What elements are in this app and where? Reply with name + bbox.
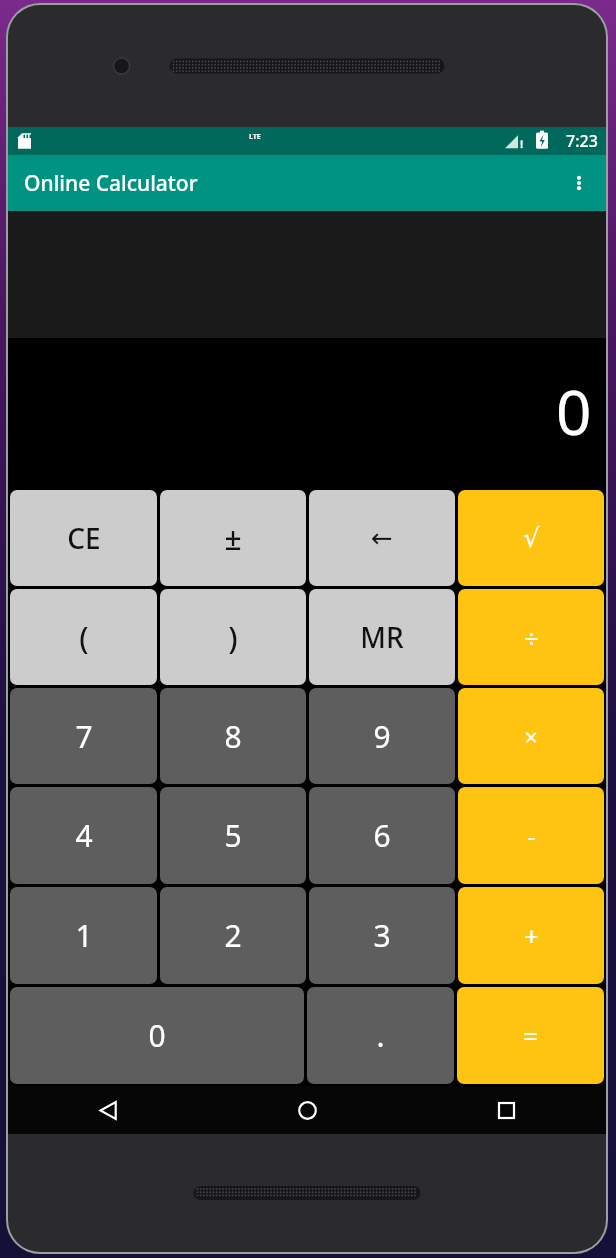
button[interactable]: Back bbox=[84, 1086, 132, 1134]
staticText: 0 bbox=[148, 1015, 166, 1056]
button[interactable]: 0 bbox=[10, 987, 304, 1084]
staticText: . bbox=[376, 1015, 385, 1056]
button[interactable]: ) bbox=[160, 589, 306, 685]
staticText: 7 bbox=[75, 716, 93, 757]
button[interactable]: 1 bbox=[10, 887, 157, 984]
button[interactable]: ← bbox=[309, 490, 455, 586]
staticText: = bbox=[523, 1018, 538, 1053]
staticText: 7:23 bbox=[566, 130, 598, 152]
staticText: ÷ bbox=[524, 620, 539, 655]
staticText: 9 bbox=[373, 716, 391, 757]
button[interactable]: MR bbox=[309, 589, 455, 685]
button[interactable]: 2 bbox=[160, 887, 306, 984]
staticText: ( bbox=[79, 617, 89, 658]
button[interactable]: × bbox=[458, 688, 604, 784]
button[interactable]: 5 bbox=[160, 787, 306, 884]
button[interactable]: CE bbox=[10, 490, 157, 586]
button[interactable]: 6 bbox=[309, 787, 455, 884]
button[interactable]: - bbox=[458, 787, 604, 884]
staticText: 5 bbox=[224, 815, 242, 856]
button[interactable]: ÷ bbox=[458, 589, 604, 685]
staticText: CE bbox=[67, 519, 101, 557]
staticText: 8 bbox=[224, 716, 242, 757]
staticText: 6 bbox=[373, 815, 391, 856]
button[interactable]: Home bbox=[283, 1086, 331, 1134]
staticText: 4 bbox=[75, 815, 93, 856]
staticText: × bbox=[524, 720, 538, 753]
button[interactable]: More options bbox=[558, 162, 600, 204]
button[interactable]: 3 bbox=[309, 887, 455, 984]
button[interactable]: ± bbox=[160, 490, 306, 586]
staticText: Online Calculator bbox=[24, 169, 198, 198]
staticText: ) bbox=[228, 617, 238, 658]
staticText: √ bbox=[523, 523, 540, 553]
button[interactable]: √ bbox=[458, 490, 604, 586]
button[interactable]: 4 bbox=[10, 787, 157, 884]
button[interactable]: Recent apps bbox=[482, 1086, 530, 1134]
staticText: ← bbox=[371, 523, 393, 553]
button[interactable]: ( bbox=[10, 589, 157, 685]
staticText: + bbox=[524, 918, 539, 953]
button[interactable]: 9 bbox=[309, 688, 455, 784]
button[interactable]: 7 bbox=[10, 688, 157, 784]
staticText: 1 bbox=[75, 915, 93, 956]
button[interactable]: = bbox=[457, 987, 604, 1084]
button[interactable]: + bbox=[458, 887, 604, 984]
staticText: MR bbox=[360, 618, 404, 656]
staticText: - bbox=[527, 818, 536, 853]
button[interactable]: . bbox=[307, 987, 454, 1084]
staticText: 3 bbox=[373, 915, 391, 956]
button[interactable]: 8 bbox=[160, 688, 306, 784]
staticText: ± bbox=[224, 518, 242, 559]
staticText: 0 bbox=[556, 369, 592, 453]
staticText: 2 bbox=[224, 915, 242, 956]
staticText: LTE bbox=[249, 132, 261, 142]
